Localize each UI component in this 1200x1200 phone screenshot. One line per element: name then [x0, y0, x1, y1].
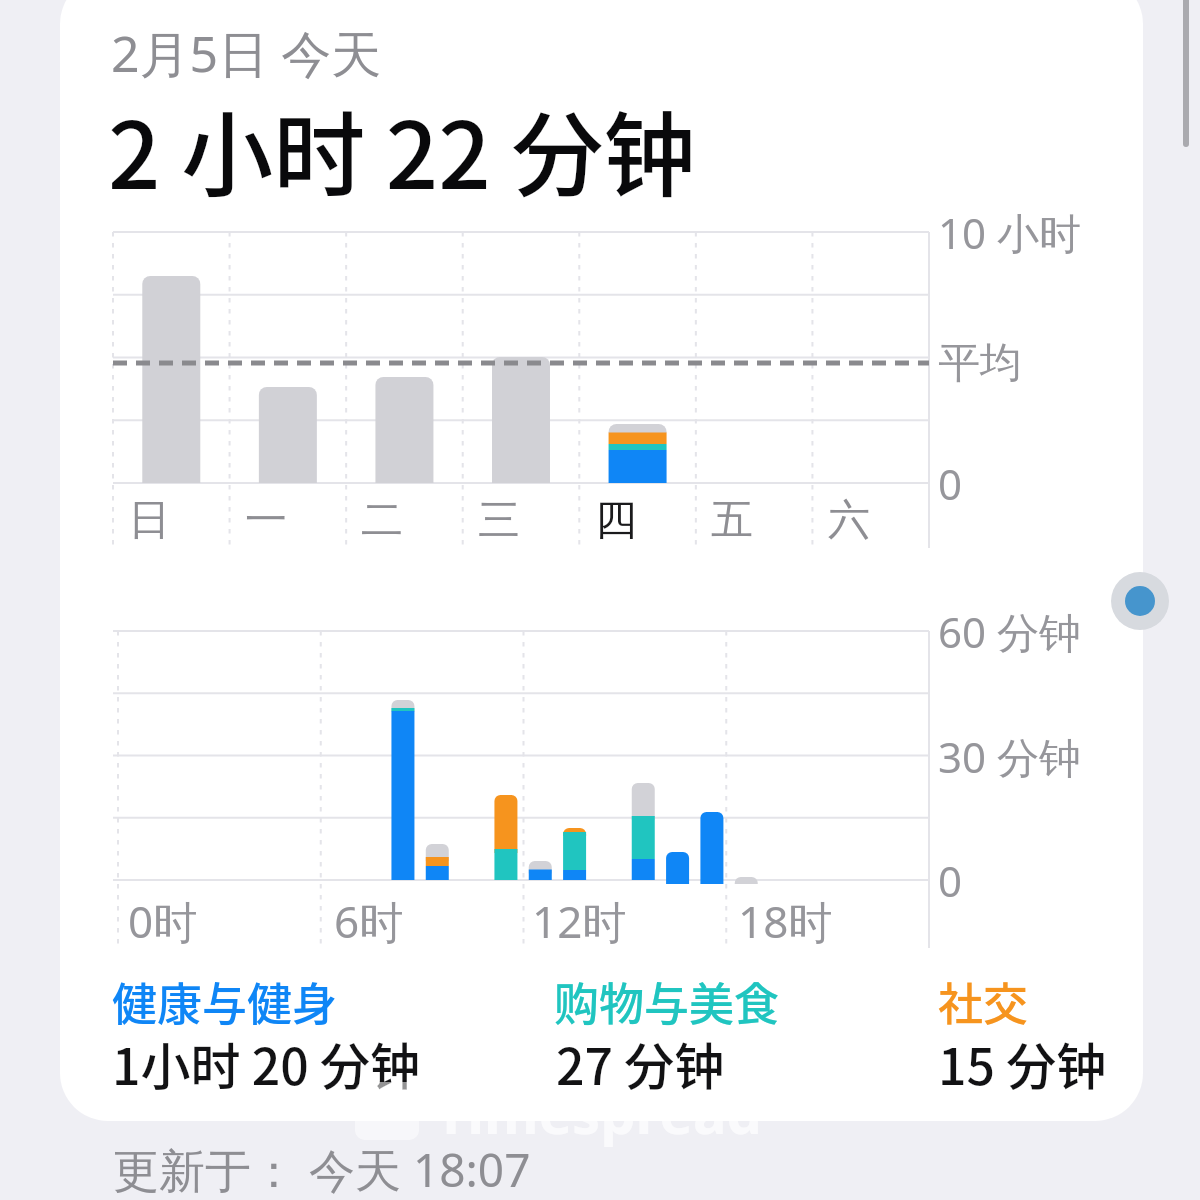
- button[interactable]: 六: [809, 480, 889, 560]
- staticText: 2 小时 22 分钟: [108, 82, 696, 215]
- staticText: 10 小时: [938, 204, 1081, 261]
- staticText: 15 分钟: [938, 1027, 1107, 1099]
- button[interactable]: 二: [342, 480, 422, 560]
- staticText: 60 分钟: [938, 603, 1081, 660]
- staticText: 18时: [738, 891, 833, 951]
- staticText: 社交: [938, 969, 1029, 1034]
- staticText: 0: [938, 852, 963, 909]
- staticText: 二: [361, 494, 403, 547]
- staticText: 健康与健身: [112, 969, 338, 1034]
- button[interactable]: 一: [226, 480, 306, 560]
- staticText: Timespread: [435, 1074, 762, 1150]
- staticText: 2月5日 今天: [111, 19, 382, 87]
- staticText: 日: [128, 494, 170, 547]
- staticText: 0: [938, 455, 963, 512]
- staticText: 四: [595, 494, 637, 547]
- button[interactable]: 日: [109, 480, 189, 560]
- staticText: 平均: [938, 337, 1022, 390]
- staticText: 6时: [334, 891, 404, 951]
- staticText: 六: [828, 494, 870, 547]
- staticText: 购物与美食: [554, 969, 780, 1034]
- button[interactable]: 五: [692, 480, 772, 560]
- staticText: 0时: [128, 891, 198, 951]
- staticText: 五: [711, 494, 753, 547]
- staticText: 30 分钟: [938, 728, 1081, 785]
- button[interactable]: 三: [459, 480, 539, 560]
- staticText: 27 分钟: [556, 1027, 725, 1099]
- button[interactable]: 四: [576, 480, 656, 560]
- staticText: 三: [478, 494, 520, 547]
- staticText: 更新于： 今天 18:07: [113, 1138, 531, 1200]
- staticText: 12时: [532, 891, 627, 951]
- button[interactable]: [1111, 572, 1169, 630]
- staticText: 一: [245, 494, 287, 547]
- staticText: 1小时 20 分钟: [112, 1027, 420, 1099]
